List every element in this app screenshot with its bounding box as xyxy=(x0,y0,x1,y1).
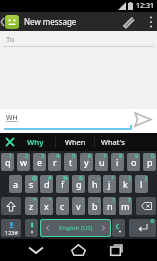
staticText: v xyxy=(76,200,81,212)
staticText: # xyxy=(48,175,52,181)
button[interactable]: y xyxy=(80,153,93,171)
staticText: u xyxy=(99,156,105,168)
staticText: ( xyxy=(129,175,131,181)
staticText: & xyxy=(79,175,84,181)
staticText: ⚙ xyxy=(150,219,155,224)
staticText: m xyxy=(121,200,130,212)
button[interactable]: o xyxy=(127,153,140,171)
staticText: l xyxy=(140,178,143,190)
button[interactable]: English (US) xyxy=(40,219,111,237)
button[interactable] xyxy=(144,12,157,31)
staticText: s xyxy=(29,178,34,190)
staticText: 5 xyxy=(72,153,76,159)
staticText: t xyxy=(69,156,73,168)
staticText: g xyxy=(76,178,82,190)
staticText: 1 xyxy=(9,153,13,159)
staticText: 0 xyxy=(151,153,155,159)
button[interactable]: p xyxy=(143,153,156,171)
button[interactable]: i xyxy=(111,153,124,171)
button[interactable] xyxy=(102,239,130,261)
button[interactable]: Why xyxy=(20,133,51,151)
staticText: % xyxy=(63,175,68,181)
button[interactable]: d xyxy=(40,175,53,193)
button[interactable]: x xyxy=(40,197,53,215)
button[interactable]: l xyxy=(135,175,148,193)
button[interactable] xyxy=(22,239,50,261)
button[interactable] xyxy=(1,197,21,215)
button[interactable]: w xyxy=(17,153,30,171)
staticText: To xyxy=(6,34,15,44)
button[interactable]: When xyxy=(56,133,94,151)
button[interactable]: New message xyxy=(0,12,157,31)
button[interactable]: e xyxy=(33,153,46,171)
staticText: b xyxy=(92,200,98,212)
staticText: ' xyxy=(66,197,68,203)
button[interactable]: What's xyxy=(93,133,133,151)
button[interactable]: ⚙ xyxy=(129,219,156,237)
button[interactable]: 123# xyxy=(1,219,21,237)
staticText: What's xyxy=(101,137,125,147)
staticText: h xyxy=(92,178,98,190)
staticText: : xyxy=(82,197,84,203)
staticText: o xyxy=(131,156,137,168)
staticText: 9 xyxy=(135,153,139,159)
staticText: e xyxy=(37,156,43,168)
button[interactable]: WH xyxy=(0,109,157,133)
button[interactable] xyxy=(119,13,137,31)
button[interactable]: u xyxy=(95,153,108,171)
staticText: w xyxy=(20,156,28,168)
button[interactable] xyxy=(25,219,38,237)
staticText: k xyxy=(123,178,128,190)
staticText: 4 xyxy=(56,153,60,159)
button[interactable]: h xyxy=(88,175,101,193)
button[interactable]: To xyxy=(0,31,157,47)
button[interactable] xyxy=(132,108,154,130)
staticText: f xyxy=(61,178,65,190)
button[interactable]: t xyxy=(64,153,77,171)
staticText: When xyxy=(65,137,86,147)
staticText: j xyxy=(108,178,111,190)
staticText: 8 xyxy=(119,153,123,159)
staticText: ; xyxy=(98,197,100,203)
staticText: a xyxy=(13,178,19,190)
button[interactable]: q xyxy=(1,153,14,171)
staticText: ! xyxy=(113,197,115,203)
staticText: i xyxy=(116,156,119,168)
staticText: p xyxy=(147,156,153,168)
button[interactable]: n xyxy=(103,197,116,215)
button[interactable] xyxy=(64,239,93,261)
staticText: 3 xyxy=(41,153,45,159)
staticText: 2 xyxy=(25,153,29,159)
button[interactable]: k xyxy=(119,175,132,193)
staticText: New message xyxy=(24,16,77,27)
button[interactable]: v xyxy=(72,197,85,215)
button[interactable]: j xyxy=(103,175,116,193)
staticText: " xyxy=(49,197,52,203)
staticText: y xyxy=(84,156,89,168)
staticText: ) xyxy=(145,175,147,181)
staticText: WH xyxy=(6,113,18,123)
staticText: - xyxy=(98,175,100,181)
button[interactable]: z xyxy=(25,197,38,215)
staticText: r xyxy=(53,156,57,168)
button[interactable] xyxy=(112,219,125,237)
staticText: 7 xyxy=(103,153,107,159)
button[interactable]: s xyxy=(25,175,38,193)
button[interactable] xyxy=(136,197,156,215)
button[interactable]: f xyxy=(56,175,69,193)
staticText: ? xyxy=(128,197,131,203)
staticText: 123# xyxy=(5,229,18,236)
button[interactable]: c xyxy=(56,197,69,215)
button[interactable]: r xyxy=(48,153,61,171)
button[interactable]: a xyxy=(9,175,22,193)
staticText: @ xyxy=(32,175,37,181)
staticText: Why xyxy=(27,137,44,147)
button[interactable]: b xyxy=(88,197,101,215)
staticText: n xyxy=(107,200,113,212)
button[interactable] xyxy=(0,133,20,151)
staticText: z xyxy=(29,200,34,212)
staticText: + xyxy=(111,175,115,181)
staticText: 6 xyxy=(88,153,92,159)
button[interactable]: m xyxy=(119,197,132,215)
button[interactable]: g xyxy=(72,175,85,193)
